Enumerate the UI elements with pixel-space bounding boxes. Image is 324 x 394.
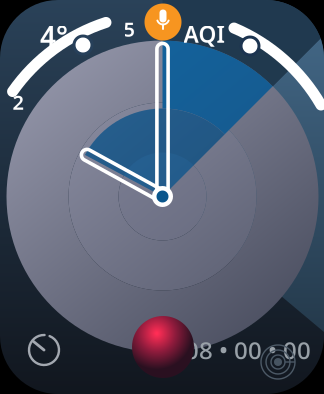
- staticText: AQI: [183, 19, 224, 49]
- button[interactable]: Timer: [24, 330, 64, 370]
- staticText: 4°: [40, 17, 68, 55]
- staticText: 08 • 00 • 00: [185, 334, 311, 366]
- button[interactable]: AQI: [0, 0, 324, 394]
- button[interactable]: Siri: [144, 3, 181, 40]
- button[interactable]: 4°: [0, 0, 324, 394]
- button[interactable]: 08 • 00 • 00: [0, 0, 324, 394]
- staticText: 5: [123, 16, 134, 42]
- button[interactable]: Siri: [131, 315, 195, 379]
- button[interactable]: Now Playing: [258, 342, 298, 382]
- staticText: 2: [12, 89, 23, 115]
